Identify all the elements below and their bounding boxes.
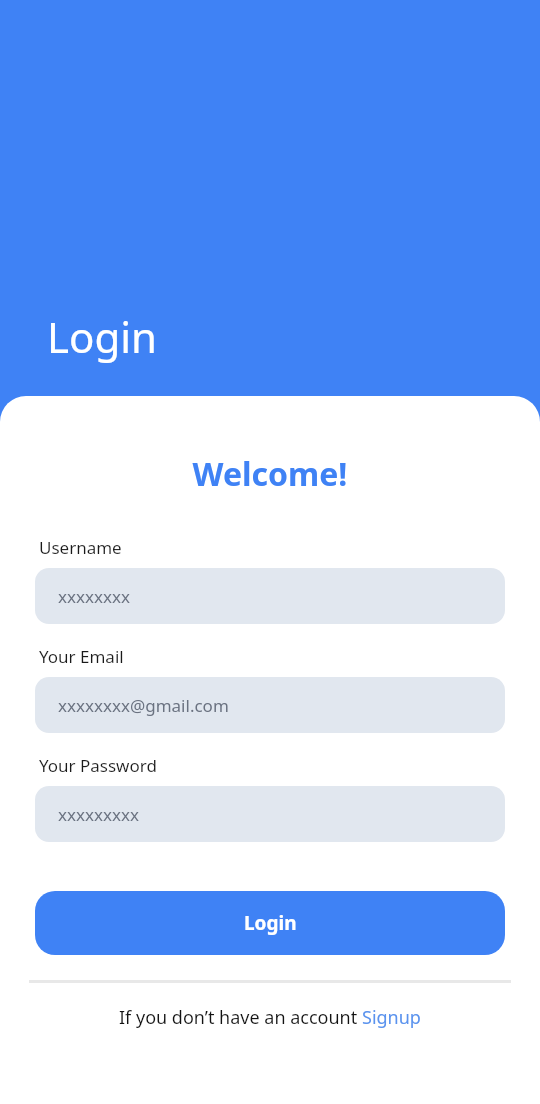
button[interactable]: Login xyxy=(35,891,505,955)
staticText: xxxxxxxx@gmail.com xyxy=(58,694,229,717)
staticText: Signup xyxy=(362,1005,421,1030)
staticText: Login xyxy=(244,910,297,936)
staticText: If you don’t have an account xyxy=(119,1005,362,1030)
button[interactable]: xxxxxxxx xyxy=(35,568,505,624)
staticText: xxxxxxxx xyxy=(58,585,130,608)
staticText: Username xyxy=(39,536,122,559)
staticText: Login xyxy=(47,308,158,365)
button[interactable]: xxxxxxxxx xyxy=(35,786,505,842)
staticText: Your Password xyxy=(39,754,157,777)
staticText: xxxxxxxxx xyxy=(58,803,139,826)
button[interactable]: Signup xyxy=(362,1005,421,1030)
staticText: Your Email xyxy=(39,645,124,668)
button[interactable]: xxxxxxxx@gmail.com xyxy=(35,677,505,733)
staticText: Welcome! xyxy=(0,452,540,496)
